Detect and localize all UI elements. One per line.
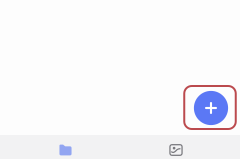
button[interactable]: Files xyxy=(33,138,97,159)
button[interactable]: Add xyxy=(194,91,228,125)
button[interactable]: Photos xyxy=(144,138,208,159)
